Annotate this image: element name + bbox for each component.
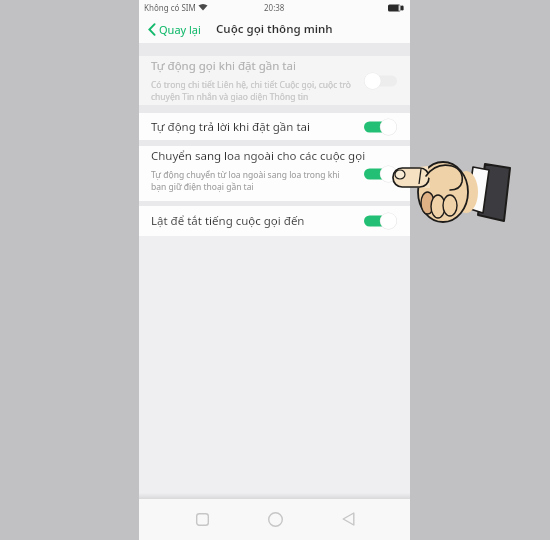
staticText: Có trong chi tiết Liên hệ, chi tiết Cuộc…: [151, 79, 351, 91]
staticText: chuyện Tin nhắn và giao diện Thông tin: [151, 91, 309, 103]
staticText: bạn giữ điện thoại gần tai: [151, 181, 254, 193]
staticText: Tự động gọi khi đặt gần tai: [151, 58, 296, 74]
button[interactable]: Lật để tắt tiếng cuộc gọi đến: [139, 206, 410, 236]
staticText: Quay lại: [159, 22, 201, 37]
staticText: 20:38: [264, 2, 285, 13]
button[interactable]: [255, 499, 295, 539]
staticText: Cuộc gọi thông minh: [216, 21, 333, 37]
button[interactable]: [364, 212, 397, 230]
button[interactable]: [364, 72, 397, 90]
button[interactable]: Tự động gọi khi đặt gần tai: [139, 56, 410, 105]
button[interactable]: [328, 499, 368, 539]
staticText: Không có SIM: [144, 2, 196, 13]
staticText: Lật để tắt tiếng cuộc gọi đến: [151, 213, 305, 229]
button[interactable]: Tự động trả lời khi đặt gần tai: [139, 113, 410, 140]
button[interactable]: [364, 165, 397, 183]
button[interactable]: [364, 118, 397, 136]
button[interactable]: [182, 499, 222, 539]
staticText: Tự động chuyển từ loa ngoài sang loa tro…: [151, 169, 340, 181]
staticText: Tự động trả lời khi đặt gần tai: [151, 119, 310, 135]
button[interactable]: Quay lại: [148, 22, 201, 37]
staticText: Chuyển sang loa ngoài cho các cuộc gọi: [151, 148, 366, 164]
button[interactable]: Chuyển sang loa ngoài cho các cuộc gọi: [139, 146, 410, 201]
